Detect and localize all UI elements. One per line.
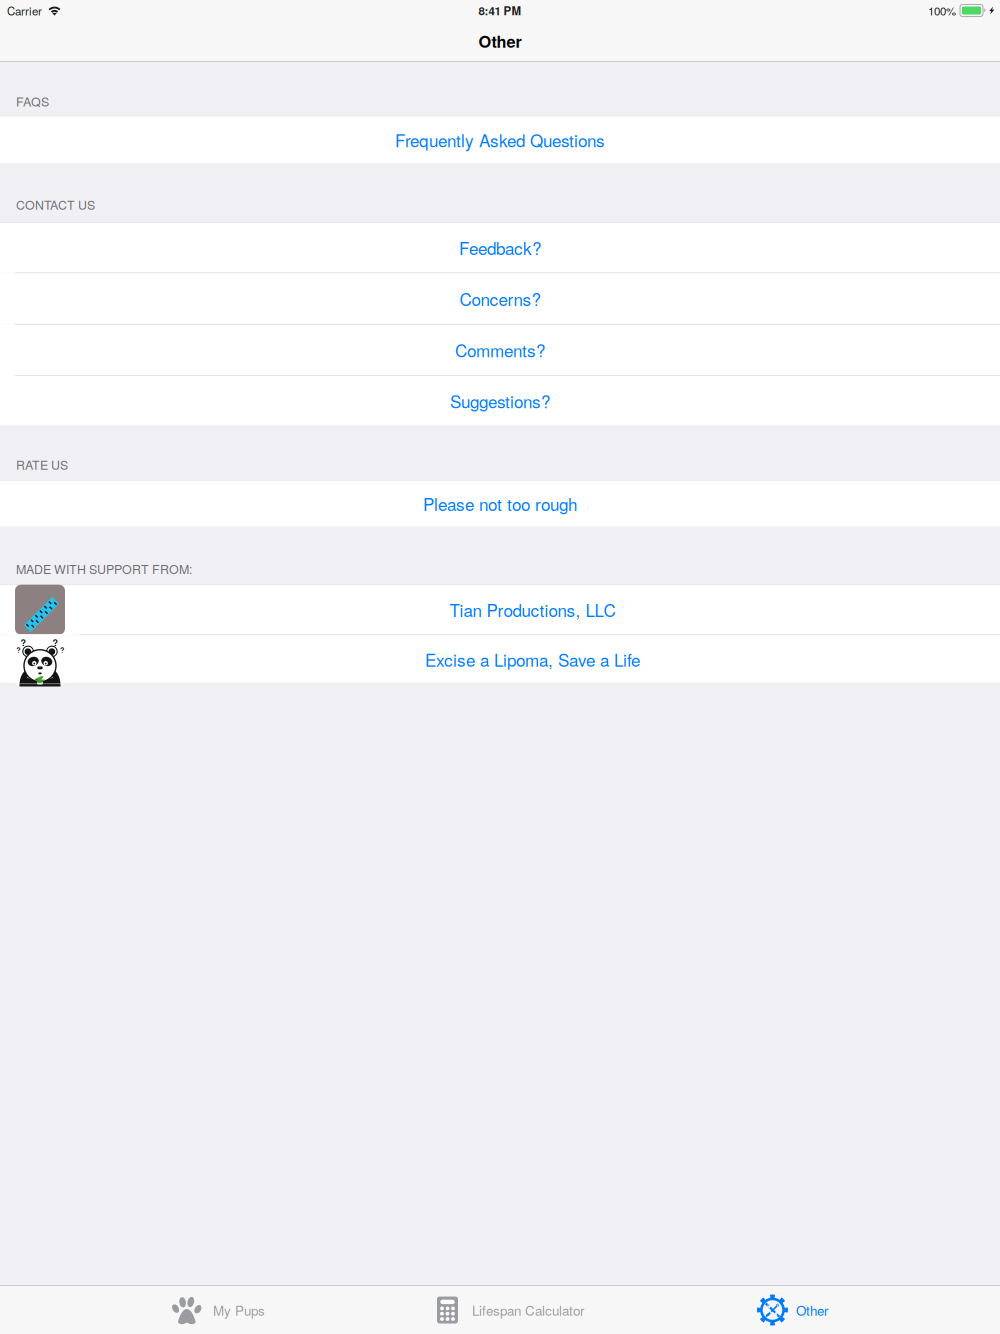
staticText: ? bbox=[52, 636, 58, 649]
button[interactable]: Please not too rough bbox=[0, 481, 1000, 527]
staticText: Comments? bbox=[455, 338, 545, 362]
button[interactable]: Feedback? bbox=[0, 223, 1000, 272]
staticText: RATE US bbox=[16, 455, 68, 473]
staticText: 100% bbox=[928, 2, 956, 19]
staticText: Concerns? bbox=[459, 286, 540, 311]
staticText: Feedback? bbox=[459, 235, 541, 260]
staticText: Tian Productions, LLC bbox=[449, 597, 615, 622]
button[interactable]: Comments? bbox=[0, 325, 1000, 375]
button[interactable]: Other bbox=[756, 1286, 828, 1334]
staticText: 8:41 PM bbox=[478, 2, 521, 19]
staticText: Suggestions? bbox=[450, 389, 550, 413]
button[interactable]: Frequently Asked Questions bbox=[0, 116, 1000, 163]
staticText: ? bbox=[16, 645, 20, 655]
staticText: ? bbox=[60, 645, 64, 655]
staticText: Frequently Asked Questions bbox=[395, 128, 605, 152]
staticText: Other bbox=[478, 29, 521, 53]
staticText: CONTACT US bbox=[16, 195, 95, 213]
staticText: Carrier bbox=[7, 2, 42, 19]
staticText: Other bbox=[796, 1300, 828, 1320]
button[interactable]: Suggestions? bbox=[0, 376, 1000, 426]
staticText: My Pups bbox=[213, 1300, 265, 1320]
staticText: Lifespan Calculator bbox=[472, 1300, 584, 1320]
staticText: FAQS bbox=[16, 92, 49, 110]
button[interactable]: ? bbox=[0, 635, 1000, 684]
staticText: ? bbox=[21, 636, 27, 649]
staticText: MADE WITH SUPPORT FROM: bbox=[16, 560, 192, 578]
button[interactable]: My Pups bbox=[172, 1286, 265, 1334]
staticText: Excise a Lipoma, Save a Life bbox=[425, 647, 640, 672]
button[interactable]: Concerns? bbox=[0, 273, 1000, 324]
button[interactable]: Tian Productions, LLC bbox=[0, 585, 1000, 634]
button[interactable]: Lifespan Calculator bbox=[437, 1286, 584, 1334]
staticText: Please not too rough bbox=[423, 491, 577, 516]
